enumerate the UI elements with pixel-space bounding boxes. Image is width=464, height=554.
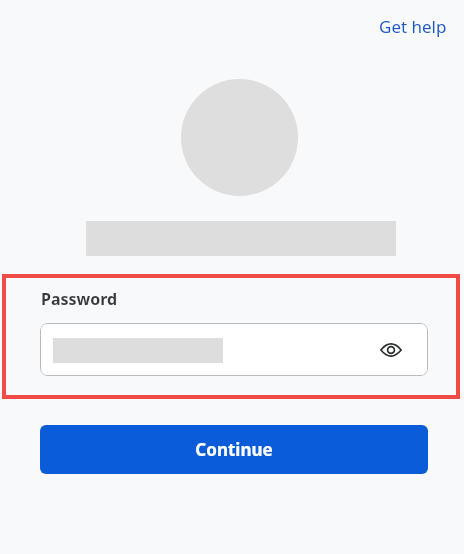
button[interactable]: Show password xyxy=(40,323,428,376)
staticText: Get help xyxy=(379,15,447,38)
staticText: Password xyxy=(41,288,118,310)
button[interactable]: Get help xyxy=(372,10,454,43)
button[interactable]: Show password xyxy=(375,334,407,366)
button[interactable]: Continue xyxy=(40,425,428,474)
staticText: Continue xyxy=(195,438,273,461)
